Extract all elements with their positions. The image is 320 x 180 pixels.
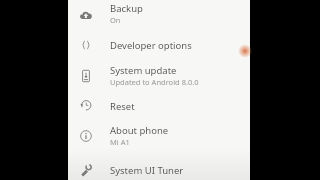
staticText: On — [110, 15, 121, 25]
button[interactable]: Backup — [68, 1, 250, 29]
staticText: Developer options — [110, 39, 192, 52]
staticText: System UI Tuner — [110, 164, 184, 177]
button[interactable]: Developer options — [68, 31, 250, 59]
staticText: System update — [110, 64, 177, 77]
staticText: Backup — [110, 2, 143, 15]
button[interactable]: Reset — [68, 91, 250, 119]
staticText: Reset — [110, 100, 135, 113]
button[interactable]: About phone — [68, 122, 250, 150]
staticText: About phone — [110, 124, 169, 137]
staticText: Mi A1 — [110, 137, 130, 147]
staticText: Updated to Android 8.0.0 — [110, 77, 199, 87]
button[interactable]: System update — [68, 62, 250, 90]
button[interactable]: System UI Tuner — [68, 156, 250, 180]
